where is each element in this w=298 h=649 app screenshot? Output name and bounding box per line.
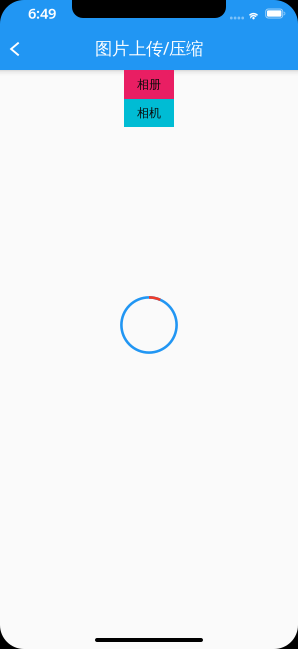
staticText: 6:49 — [28, 3, 56, 23]
staticText: 相机 — [137, 106, 161, 120]
button[interactable]: Back — [0, 26, 30, 70]
button[interactable]: 相机 — [124, 99, 174, 127]
staticText: 相册 — [137, 77, 161, 92]
button[interactable]: 相册 — [124, 70, 174, 99]
staticText: 图片上传/压缩 — [95, 36, 203, 59]
